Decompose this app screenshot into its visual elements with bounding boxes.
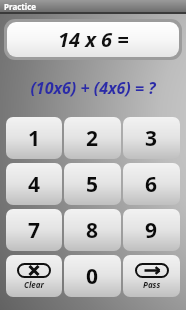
button[interactable]: 1	[6, 117, 62, 159]
button[interactable]: 7	[6, 209, 62, 251]
staticText: 9	[145, 216, 158, 245]
staticText: Clear	[24, 279, 44, 290]
staticText: 4	[28, 170, 41, 199]
staticText: 5	[86, 170, 99, 199]
button[interactable]: 2	[64, 117, 121, 159]
staticText: 7	[28, 216, 41, 245]
button[interactable]: 6	[123, 163, 180, 205]
button[interactable]: 8	[64, 209, 121, 251]
staticText: (10x6) + (4x6) = ?	[30, 77, 156, 99]
staticText: 1	[28, 124, 41, 153]
staticText: 6	[145, 170, 158, 199]
staticText: 14 x 6 =	[58, 26, 129, 53]
button[interactable]: 4	[6, 163, 62, 205]
staticText: Practice	[4, 1, 37, 12]
staticText: 3	[145, 124, 158, 153]
staticText: Pass	[143, 279, 161, 290]
staticText: 0	[86, 262, 99, 291]
staticText: 8	[86, 216, 99, 245]
button[interactable]: 9	[123, 209, 180, 251]
button[interactable]: Pass	[123, 255, 180, 297]
button[interactable]: 0	[64, 255, 121, 297]
button[interactable]: 5	[64, 163, 121, 205]
staticText: 2	[86, 124, 99, 153]
button[interactable]: Clear	[6, 255, 62, 297]
button[interactable]: 3	[123, 117, 180, 159]
